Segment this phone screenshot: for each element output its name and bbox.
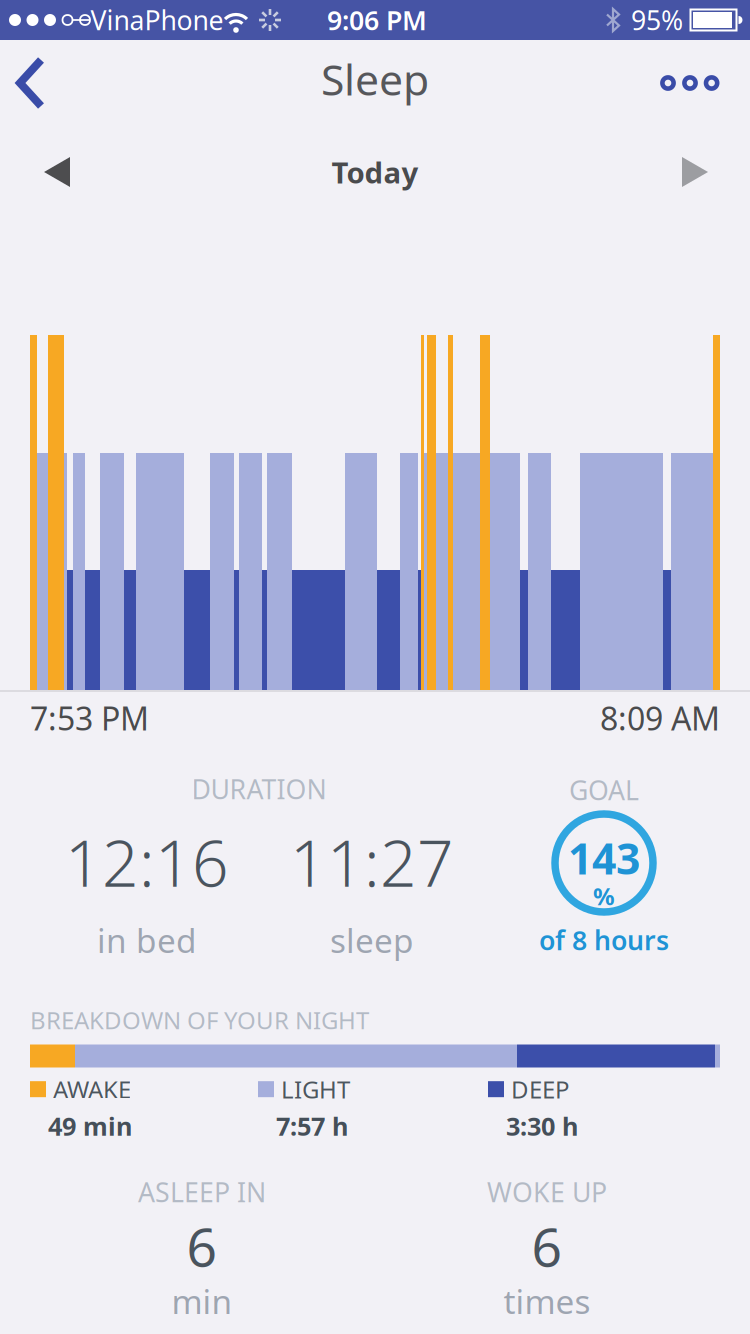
staticText: DURATION: [191, 771, 326, 807]
staticText: 6: [531, 1211, 562, 1281]
staticText: 7:57 h: [276, 1109, 348, 1143]
button[interactable]: [27, 140, 87, 204]
staticText: WOKE UP: [487, 1174, 607, 1210]
button[interactable]: [665, 140, 725, 204]
staticText: 6: [186, 1211, 217, 1281]
staticText: 8:09 AM: [600, 697, 720, 739]
staticText: sleep: [330, 918, 414, 962]
staticText: 3:30 h: [506, 1109, 578, 1143]
staticText: 95%: [631, 2, 683, 38]
staticText: 12:16: [65, 819, 229, 904]
staticText: 143: [568, 830, 640, 886]
staticText: 11:27: [290, 819, 454, 904]
staticText: 9:06 PM: [327, 2, 427, 38]
staticText: VinaPhone: [90, 2, 223, 38]
staticText: BREAKDOWN OF YOUR NIGHT: [30, 1004, 369, 1036]
staticText: 49 min: [48, 1109, 132, 1143]
staticText: ASLEEP IN: [138, 1174, 266, 1210]
staticText: Sleep: [321, 51, 429, 107]
staticText: min: [171, 1279, 232, 1323]
staticText: LIGHT: [281, 1073, 350, 1105]
staticText: Today: [331, 152, 418, 191]
staticText: GOAL: [569, 772, 639, 808]
button[interactable]: [656, 61, 746, 105]
staticText: 7:53 PM: [30, 697, 149, 739]
staticText: in bed: [97, 918, 197, 962]
staticText: of 8 hours: [539, 922, 669, 958]
staticText: %: [593, 880, 615, 912]
button[interactable]: [0, 40, 60, 128]
staticText: times: [503, 1279, 590, 1323]
staticText: DEEP: [511, 1073, 570, 1105]
staticText: AWAKE: [53, 1073, 131, 1105]
